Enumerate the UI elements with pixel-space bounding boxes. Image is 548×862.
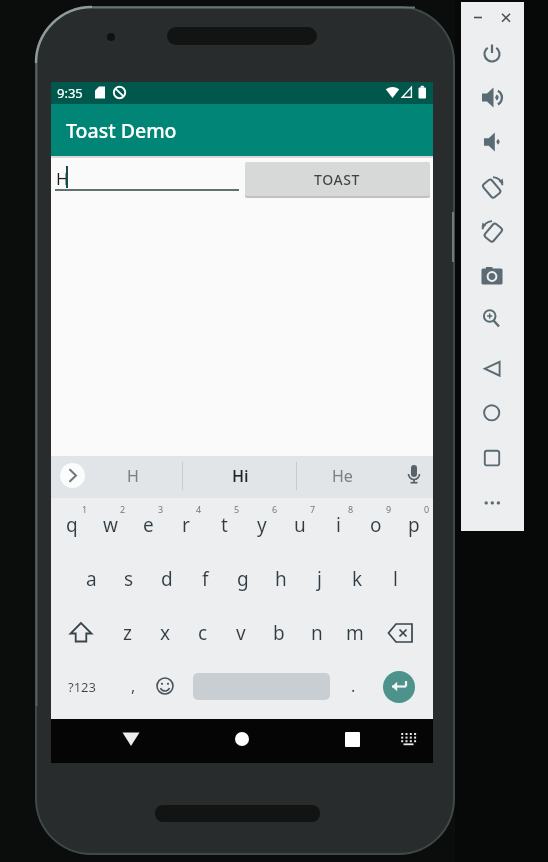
- staticText: 8: [348, 503, 354, 515]
- button[interactable]: [482, 358, 502, 378]
- button[interactable]: b: [260, 613, 298, 653]
- button[interactable]: [399, 732, 418, 746]
- staticText: .: [351, 675, 356, 697]
- button[interactable]: [479, 308, 505, 334]
- staticText: t: [221, 512, 228, 538]
- button[interactable]: [156, 677, 174, 695]
- button[interactable]: [404, 462, 424, 490]
- button[interactable]: r: [167, 505, 205, 545]
- button[interactable]: p: [395, 505, 433, 545]
- staticText: f: [202, 566, 209, 592]
- button[interactable]: l: [376, 559, 414, 599]
- button[interactable]: [115, 725, 147, 753]
- button[interactable]: [482, 43, 503, 64]
- staticText: c: [198, 620, 208, 646]
- button[interactable]: He: [320, 458, 364, 494]
- staticText: r: [182, 512, 190, 538]
- staticText: He: [332, 465, 353, 487]
- button[interactable]: d: [148, 559, 186, 599]
- staticText: q: [66, 512, 78, 538]
- button[interactable]: [482, 403, 502, 423]
- button[interactable]: TOAST: [245, 162, 430, 196]
- staticText: k: [352, 566, 363, 592]
- staticText: 7: [310, 503, 316, 515]
- staticText: x: [160, 620, 171, 646]
- button[interactable]: Hi: [218, 458, 262, 494]
- button[interactable]: t: [205, 505, 243, 545]
- button[interactable]: q: [53, 505, 91, 545]
- button[interactable]: [481, 131, 503, 153]
- button[interactable]: [339, 726, 366, 753]
- staticText: v: [236, 620, 246, 646]
- staticText: g: [237, 566, 249, 592]
- staticText: d: [161, 566, 173, 592]
- staticText: 4: [196, 503, 202, 515]
- staticText: 1: [82, 503, 88, 515]
- button[interactable]: z: [108, 613, 146, 653]
- staticText: o: [370, 512, 382, 538]
- button[interactable]: ?123: [58, 673, 106, 701]
- staticText: 5: [234, 503, 240, 515]
- button[interactable]: [479, 218, 506, 245]
- button[interactable]: f: [186, 559, 224, 599]
- button[interactable]: H: [113, 458, 153, 494]
- button[interactable]: [383, 671, 415, 703]
- button[interactable]: e: [129, 505, 167, 545]
- staticText: u: [294, 512, 306, 538]
- button[interactable]: x: [146, 613, 184, 653]
- staticText: ,: [131, 675, 136, 697]
- staticText: 6: [272, 503, 278, 515]
- button[interactable]: h: [262, 559, 300, 599]
- staticText: l: [393, 566, 398, 592]
- button[interactable]: [482, 448, 502, 468]
- staticText: Toast Demo: [66, 117, 177, 144]
- button[interactable]: o: [357, 505, 395, 545]
- button[interactable]: v: [222, 613, 260, 653]
- button[interactable]: g: [224, 559, 262, 599]
- button[interactable]: ,: [123, 671, 143, 701]
- button[interactable]: k: [338, 559, 376, 599]
- button[interactable]: [479, 174, 506, 201]
- button[interactable]: n: [298, 613, 336, 653]
- staticText: e: [143, 512, 154, 538]
- button[interactable]: y: [243, 505, 281, 545]
- staticText: p: [408, 512, 420, 538]
- staticText: s: [124, 566, 134, 592]
- button[interactable]: c: [184, 613, 222, 653]
- button[interactable]: [67, 619, 95, 647]
- staticText: a: [86, 566, 97, 592]
- button[interactable]: [228, 725, 256, 753]
- staticText: h: [275, 566, 287, 592]
- staticText: m: [346, 620, 364, 646]
- staticText: b: [273, 620, 285, 646]
- staticText: w: [103, 512, 118, 538]
- staticText: 9: [386, 503, 392, 515]
- button[interactable]: a: [72, 559, 110, 599]
- staticText: n: [311, 620, 323, 646]
- staticText: i: [336, 512, 341, 538]
- button[interactable]: m: [336, 613, 374, 653]
- staticText: H: [127, 465, 139, 487]
- button[interactable]: [482, 497, 502, 509]
- button[interactable]: .: [343, 671, 363, 701]
- staticText: 0: [424, 503, 430, 515]
- button[interactable]: [385, 620, 415, 646]
- button[interactable]: [60, 463, 85, 488]
- staticText: 9:35: [57, 84, 83, 102]
- button[interactable]: [480, 86, 504, 110]
- staticText: ?123: [68, 678, 96, 696]
- button[interactable]: [55, 158, 239, 194]
- staticText: y: [257, 512, 267, 538]
- button[interactable]: i: [319, 505, 357, 545]
- staticText: z: [123, 620, 132, 646]
- button[interactable]: s: [110, 559, 148, 599]
- staticText: TOAST: [314, 170, 361, 189]
- staticText: j: [317, 566, 322, 592]
- button[interactable]: w: [91, 505, 129, 545]
- button[interactable]: [480, 265, 504, 287]
- button[interactable]: j: [300, 559, 338, 599]
- staticText: Hi: [232, 465, 249, 487]
- button[interactable]: u: [281, 505, 319, 545]
